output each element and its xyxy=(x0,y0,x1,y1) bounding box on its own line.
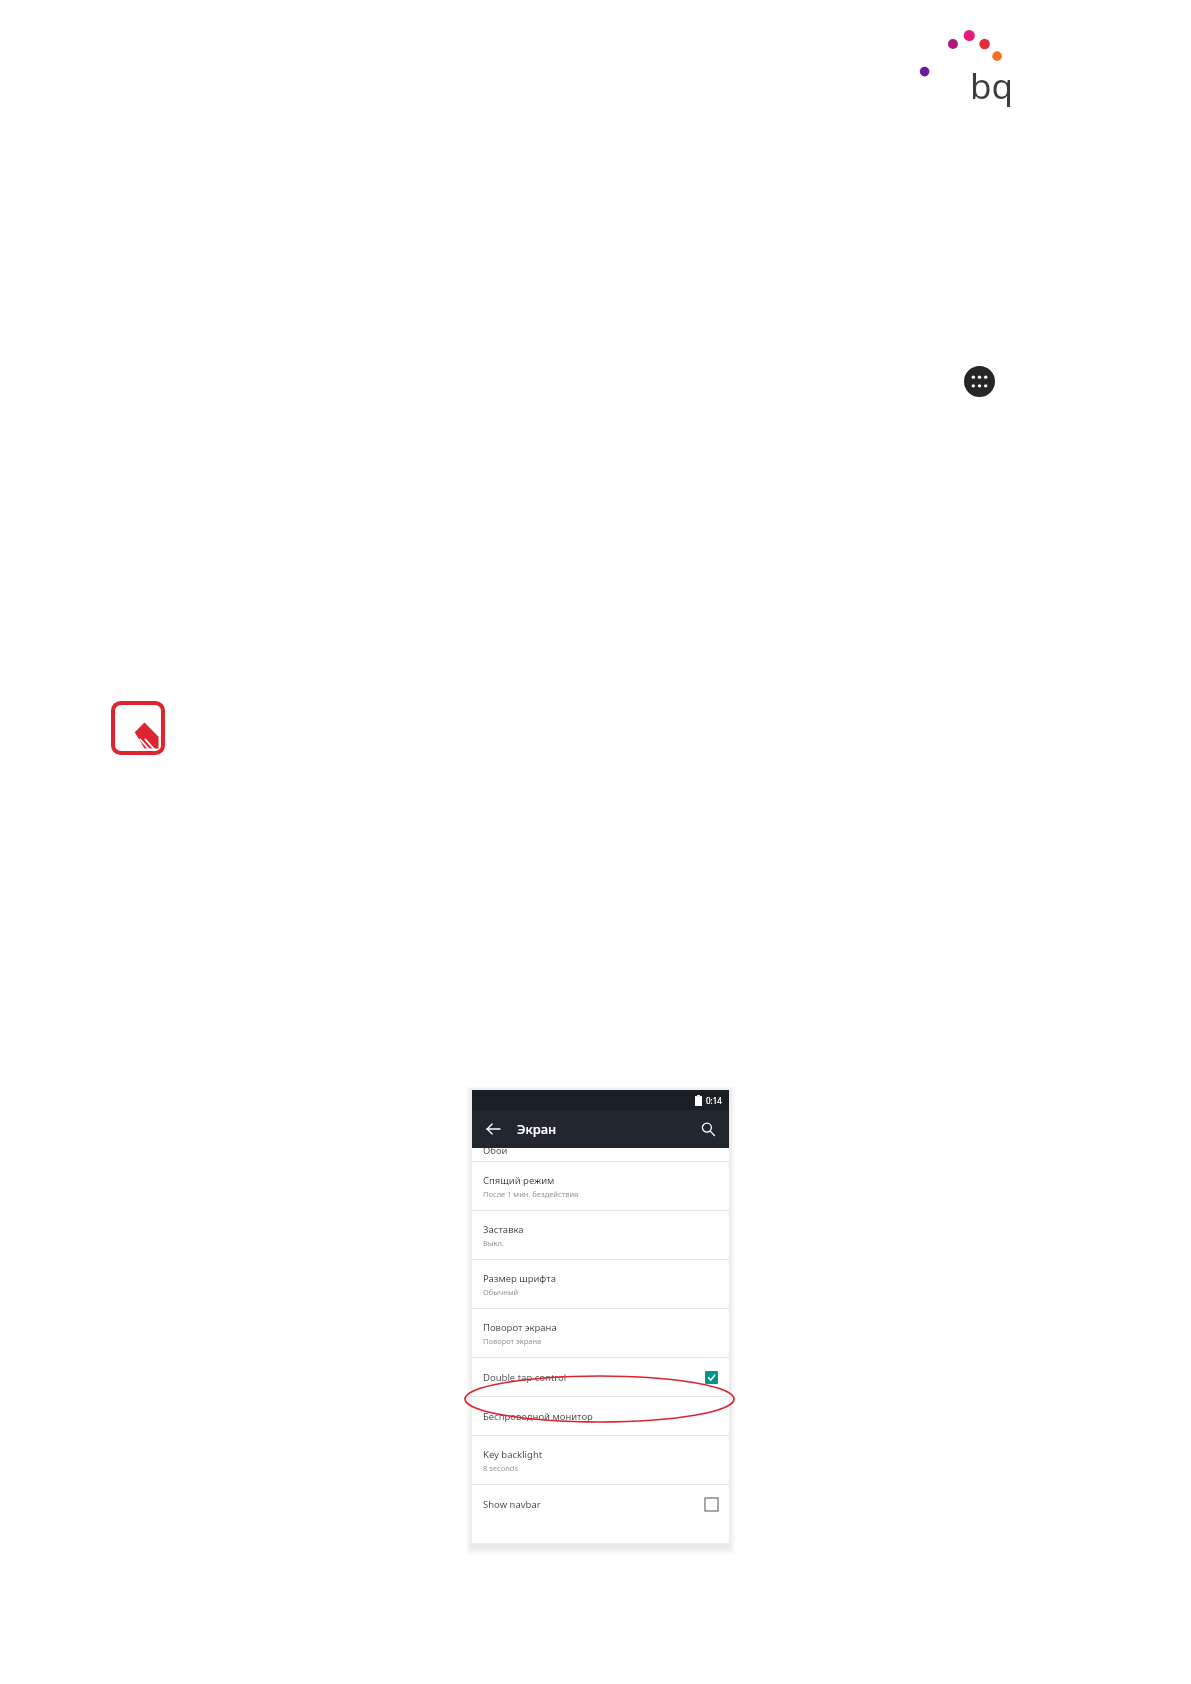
button[interactable]: Double tap control xyxy=(472,1358,729,1396)
button[interactable]: Размер шрифта xyxy=(472,1260,729,1308)
staticText: Key backlight xyxy=(483,1448,543,1461)
staticText: Экран xyxy=(517,1120,557,1138)
staticText: Show navbar xyxy=(483,1498,541,1511)
staticText: Обычный xyxy=(483,1287,519,1297)
staticText: Заставка xyxy=(483,1223,524,1236)
staticText: Размер шрифта xyxy=(483,1272,556,1285)
button[interactable]: Double tap control, checked xyxy=(705,1371,718,1384)
staticText: Double tap control xyxy=(483,1371,567,1384)
button[interactable]: Back xyxy=(482,1118,504,1140)
button[interactable]: Key backlight xyxy=(472,1436,729,1484)
staticText: Поворот экрана xyxy=(483,1336,542,1346)
button[interactable]: Беспроводной монитор xyxy=(472,1397,729,1435)
button[interactable]: Поворот экрана xyxy=(472,1309,729,1357)
button[interactable]: Apps xyxy=(964,366,995,397)
staticText: После 1 мин. бездействия xyxy=(483,1189,579,1199)
staticText: Беспроводной монитор xyxy=(483,1410,593,1423)
staticText: Спящий режим xyxy=(483,1174,555,1187)
button[interactable]: Show navbar xyxy=(472,1485,729,1523)
button[interactable]: Show navbar, unchecked xyxy=(705,1498,718,1511)
button[interactable]: Заставка xyxy=(472,1211,729,1259)
staticText: 8 seconds xyxy=(483,1463,519,1473)
staticText: 0:14 xyxy=(706,1095,722,1106)
staticText: Поворот экрана xyxy=(483,1321,557,1334)
staticText: Обои xyxy=(483,1144,508,1157)
staticText: Выкл. xyxy=(483,1238,504,1248)
button[interactable]: Search xyxy=(697,1118,719,1140)
button[interactable]: Спящий режим xyxy=(472,1162,729,1210)
staticText: bq xyxy=(970,62,1014,110)
